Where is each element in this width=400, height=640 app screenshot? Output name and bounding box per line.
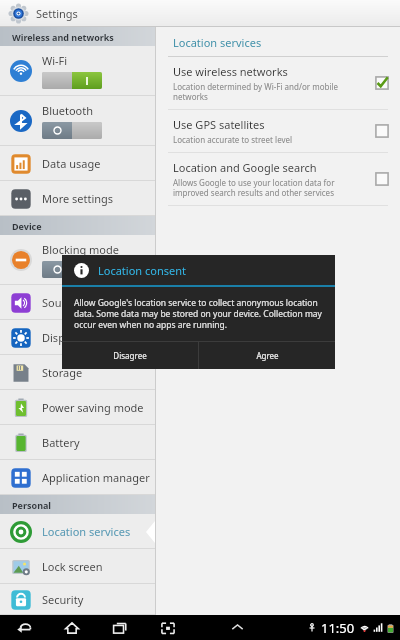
staticText: Battery <box>42 435 80 450</box>
staticText: Settings <box>36 6 78 21</box>
button[interactable]: Disagree <box>62 342 198 369</box>
button[interactable]: Display <box>0 320 155 355</box>
staticText: Disagree <box>113 350 147 361</box>
staticText: 11:50 <box>321 619 355 637</box>
button[interactable]: Location services <box>0 514 155 549</box>
button[interactable]: Sound <box>0 285 155 320</box>
staticText: Power saving mode <box>42 400 144 415</box>
staticText: Display <box>42 330 80 345</box>
staticText: Location consent <box>98 263 186 278</box>
staticText: More settings <box>42 191 114 206</box>
button[interactable]: Blocking mode <box>0 235 155 285</box>
button[interactable]: Storage <box>0 355 155 390</box>
button[interactable]: Battery <box>0 425 155 460</box>
staticText: Use GPS satellites <box>173 117 265 132</box>
button[interactable]: Home <box>48 615 96 640</box>
other: Use wireless networks <box>374 75 390 91</box>
button[interactable]: Screenshot <box>144 615 192 640</box>
button[interactable]: Application manager <box>0 460 155 495</box>
button[interactable]: Location and Google search <box>156 153 400 205</box>
staticText: Allows Google to use your location data … <box>173 177 335 198</box>
staticText: Allow Google's location service to colle… <box>74 297 323 330</box>
button[interactable]: Bluetooth <box>0 96 155 146</box>
staticText: Blocking mode <box>42 242 119 257</box>
staticText: Sound <box>42 295 76 310</box>
button[interactable]: Wi-Fi <box>0 46 155 96</box>
staticText: Location services <box>42 524 131 539</box>
staticText: Location and Google search <box>173 160 317 175</box>
staticText: Wi-Fi <box>42 53 68 68</box>
staticText: Location determined by Wi-Fi and/or mobi… <box>173 81 339 102</box>
staticText: Security <box>42 592 84 607</box>
button[interactable]: Lock screen <box>0 549 155 584</box>
button[interactable]: Expand <box>222 615 252 640</box>
button[interactable]: Back <box>0 615 48 640</box>
button[interactable] <box>42 261 102 278</box>
staticText: Agree <box>256 350 279 361</box>
staticText: Device <box>12 220 42 232</box>
staticText: Location services <box>173 35 262 50</box>
button[interactable]: Use GPS satellites <box>156 110 400 152</box>
button[interactable] <box>42 72 102 89</box>
button[interactable]: Recents <box>96 615 144 640</box>
button[interactable]: Power saving mode <box>0 390 155 425</box>
button[interactable]: Security <box>0 584 155 615</box>
other: Location and Google search <box>374 171 390 187</box>
staticText: Storage <box>42 365 83 380</box>
button[interactable]: Agree <box>199 342 335 369</box>
staticText: Personal <box>12 499 52 511</box>
button[interactable] <box>42 122 102 139</box>
staticText: Lock screen <box>42 559 103 574</box>
staticText: Location accurate to street level <box>173 134 293 145</box>
staticText: Data usage <box>42 156 101 171</box>
staticText: Application manager <box>42 470 150 485</box>
other: Use GPS satellites <box>374 123 390 139</box>
staticText: Bluetooth <box>42 103 94 118</box>
button[interactable]: Use wireless networks <box>156 57 400 109</box>
staticText: Wireless and networks <box>12 31 114 43</box>
button[interactable]: Data usage <box>0 146 155 181</box>
button[interactable]: More settings <box>0 181 155 216</box>
staticText: Use wireless networks <box>173 64 288 79</box>
